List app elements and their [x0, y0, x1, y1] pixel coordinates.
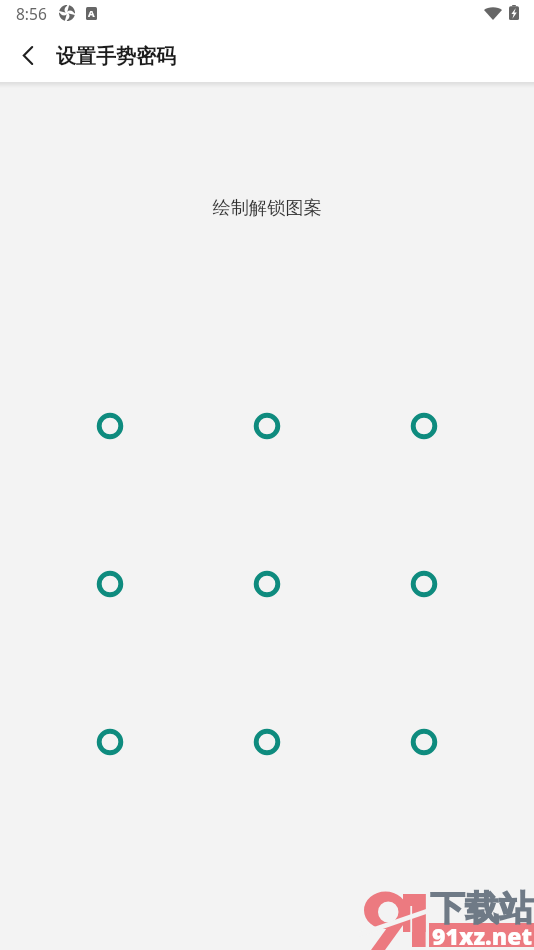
button[interactable]: Pattern dot row 1 column 1 — [84, 400, 136, 452]
button[interactable]: Pattern dot row 2 column 1 — [84, 558, 136, 610]
staticText: 绘制解锁图案 — [0, 196, 534, 219]
button[interactable]: Back — [8, 34, 48, 74]
button[interactable]: Pattern dot row 3 column 1 — [84, 716, 136, 768]
staticText: 设置手势密码 — [56, 44, 176, 69]
button[interactable]: Pattern dot row 3 column 2 — [241, 716, 293, 768]
staticText: A — [88, 7, 95, 20]
staticText: 91xz.net — [432, 920, 532, 950]
button[interactable]: Pattern dot row 3 column 3 — [398, 716, 450, 768]
button[interactable]: Pattern dot row 2 column 3 — [398, 558, 450, 610]
button[interactable]: Pattern dot row 1 column 2 — [241, 400, 293, 452]
staticText: 8:56 — [16, 3, 47, 24]
staticText: 下载站 — [430, 887, 534, 930]
button[interactable]: Pattern dot row 1 column 3 — [398, 400, 450, 452]
button[interactable]: Pattern dot row 2 column 2 — [241, 558, 293, 610]
